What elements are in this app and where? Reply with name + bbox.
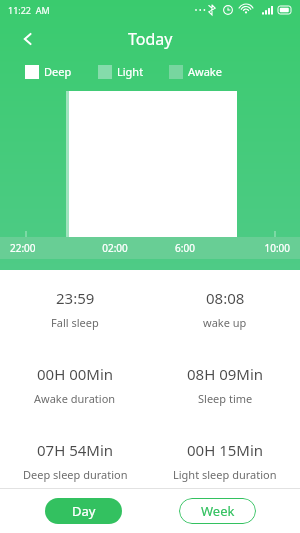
staticText: 08:08 xyxy=(206,288,245,308)
button[interactable]: 00H 15Min xyxy=(150,440,300,482)
button[interactable]: Back xyxy=(10,21,46,57)
staticText: 11:22 AM xyxy=(8,4,50,16)
staticText: 00H 00Min xyxy=(37,364,114,384)
staticText: Sleep time xyxy=(198,391,253,406)
button[interactable]: 08H 09Min xyxy=(150,364,300,406)
staticText: Day xyxy=(72,502,96,520)
button[interactable]: 08:08 xyxy=(150,288,300,330)
staticText: Awake xyxy=(188,64,222,79)
staticText: Deep sleep duration xyxy=(23,467,128,482)
button[interactable]: 23:59 xyxy=(0,288,150,330)
staticText: Awake duration xyxy=(34,391,116,406)
staticText: Fall sleep xyxy=(51,315,99,330)
staticText: 6:00 xyxy=(150,241,220,255)
staticText: 00H 15Min xyxy=(187,440,264,460)
button[interactable]: Week xyxy=(179,498,256,524)
staticText: Light sleep duration xyxy=(173,467,277,482)
staticText: 10:00 xyxy=(220,241,290,255)
staticText: Today xyxy=(128,28,173,50)
staticText: Week xyxy=(201,502,235,520)
staticText: Light xyxy=(117,64,144,79)
staticText: Deep xyxy=(44,64,72,79)
staticText: 23:59 xyxy=(56,288,95,308)
button[interactable]: Day xyxy=(45,498,122,524)
staticText: wake up xyxy=(203,315,247,330)
button[interactable]: 00H 00Min xyxy=(0,364,150,406)
staticText: 08H 09Min xyxy=(187,364,264,384)
staticText: 07H 54Min xyxy=(37,440,114,460)
staticText: 22:00 xyxy=(10,241,80,255)
button[interactable]: 07H 54Min xyxy=(0,440,150,482)
staticText: 02:00 xyxy=(80,241,150,255)
